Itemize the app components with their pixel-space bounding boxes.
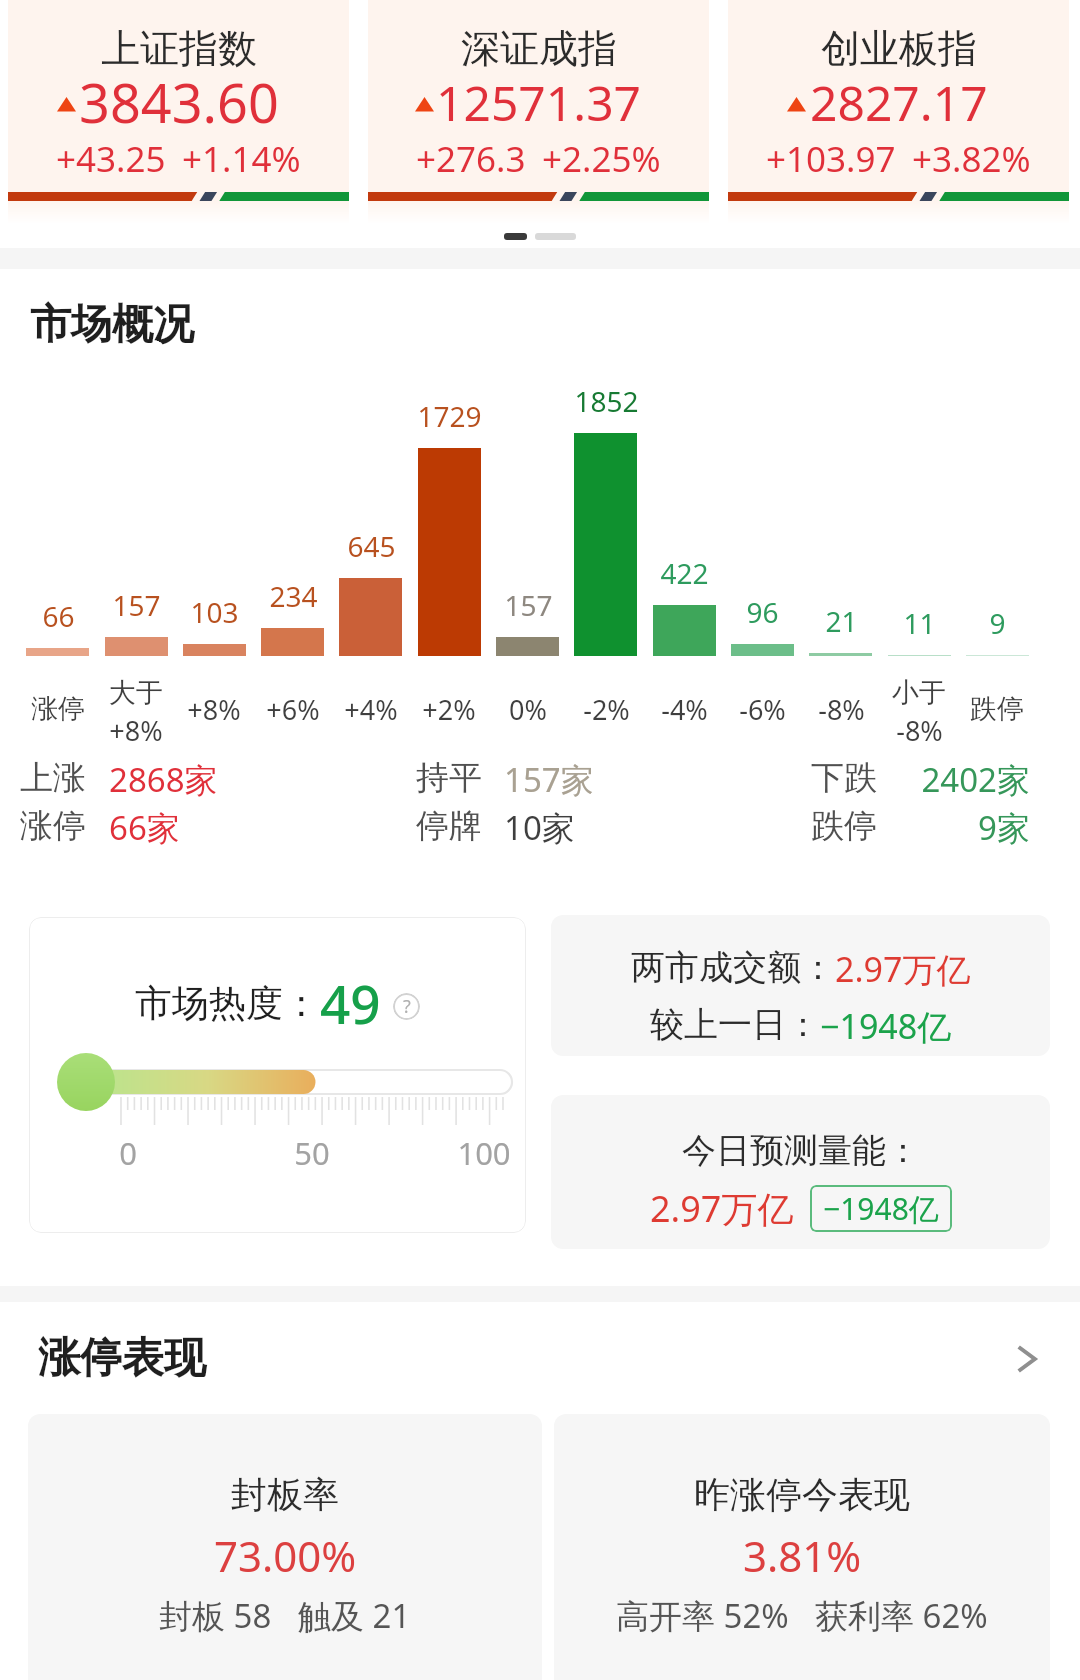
staticText: +4% [344, 691, 398, 728]
button[interactable]: 今日预测量能： [551, 1095, 1050, 1249]
button[interactable]: 市场热度： [29, 917, 526, 1233]
staticText: 2868家 [109, 757, 218, 802]
staticText: 上涨 [20, 757, 86, 799]
staticText: 3843.60 [79, 65, 279, 139]
staticText: -8% [896, 712, 943, 742]
staticText: 深证成指 [461, 24, 617, 73]
staticText: +276.3 [416, 135, 526, 183]
staticText: 大于 [109, 676, 163, 710]
staticText: +103.97 [766, 135, 896, 183]
staticText: 涨停表现 [38, 1332, 206, 1385]
staticText: 12571.37 [436, 70, 642, 135]
staticText: 157 [504, 586, 553, 624]
staticText: 上证指数 [101, 24, 257, 73]
staticText: 21 [825, 602, 858, 640]
staticText: +2.25% [542, 135, 661, 183]
staticText: +43.25 [56, 135, 166, 183]
staticText: 1729 [417, 397, 482, 435]
staticText: 获利率 62% [815, 1593, 988, 1638]
staticText: 0 [119, 1132, 137, 1166]
button[interactable]: 昨涨停今表现 [554, 1414, 1050, 1680]
staticText: +6% [266, 691, 320, 728]
staticText: 50 [294, 1132, 330, 1166]
staticText: 较上一日： [650, 1003, 820, 1046]
button[interactable]: 说明 [393, 993, 420, 1020]
staticText: 跌停 [811, 805, 877, 847]
staticText: ? [403, 994, 411, 1019]
staticText: +1.14% [182, 135, 301, 183]
staticText: 创业板指 [821, 24, 977, 73]
staticText: 96 [746, 593, 779, 631]
staticText: -6% [739, 691, 786, 728]
staticText: +8% [109, 712, 163, 742]
staticText: +8% [187, 691, 241, 728]
staticText: 封板 58 [159, 1593, 272, 1638]
staticText: 2.97万亿 [835, 946, 971, 992]
staticText: 66 [42, 597, 75, 635]
button[interactable]: 深证成指 [368, 0, 709, 224]
button[interactable]: 上证指数 [8, 0, 349, 224]
staticText: 2402家 [921, 757, 1030, 802]
staticText: 小于 [892, 676, 946, 710]
staticText: 73.00% [214, 1527, 357, 1584]
staticText: 9 [989, 604, 1006, 642]
staticText: −1948亿 [820, 1003, 952, 1049]
staticText: 2827.17 [810, 70, 988, 135]
staticText: -2% [583, 691, 630, 728]
staticText: 持平 [416, 757, 482, 799]
button[interactable]: 创业板指 [728, 0, 1069, 224]
staticText: 高开率 52% [616, 1593, 789, 1638]
staticText: 触及 21 [298, 1593, 411, 1638]
staticText: 234 [269, 577, 318, 615]
staticText: 下跌 [811, 757, 877, 799]
staticText: 2.97万亿 [650, 1184, 794, 1233]
staticText: 两市成交额： [631, 946, 835, 989]
staticText: −1948亿 [823, 1188, 939, 1229]
staticText: 100 [457, 1132, 511, 1166]
other: 更多 [1014, 1339, 1040, 1379]
button[interactable]: 两市成交额： [551, 915, 1050, 1056]
staticText: +3.82% [912, 135, 1031, 183]
staticText: 10家 [504, 805, 575, 850]
staticText: 封板率 [231, 1472, 339, 1517]
staticText: 涨停 [31, 692, 85, 726]
button[interactable]: 封板率 [28, 1414, 542, 1680]
staticText: 645 [347, 527, 396, 565]
staticText: 422 [660, 554, 709, 592]
staticText: 157 [112, 586, 161, 624]
button[interactable]: 涨停表现 [38, 1332, 1050, 1385]
staticText: 1852 [574, 382, 639, 420]
staticText: 市场概况 [30, 299, 194, 351]
staticText: -8% [818, 691, 865, 728]
staticText: 涨停 [20, 805, 86, 847]
staticText: 今日预测量能： [682, 1129, 920, 1172]
staticText: 停牌 [416, 805, 482, 847]
staticText: 9家 [978, 805, 1030, 850]
staticText: 157家 [504, 757, 594, 802]
staticText: 0% [509, 691, 547, 728]
staticText: -4% [661, 691, 708, 728]
staticText: 11 [903, 604, 936, 642]
staticText: +2% [422, 691, 476, 728]
staticText: 市场热度： [135, 980, 320, 1027]
staticText: 66家 [109, 805, 180, 850]
staticText: 49 [320, 967, 381, 1039]
staticText: 3.81% [743, 1527, 862, 1584]
staticText: 跌停 [970, 692, 1024, 726]
staticText: 昨涨停今表现 [694, 1472, 910, 1517]
staticText: 103 [190, 593, 239, 631]
